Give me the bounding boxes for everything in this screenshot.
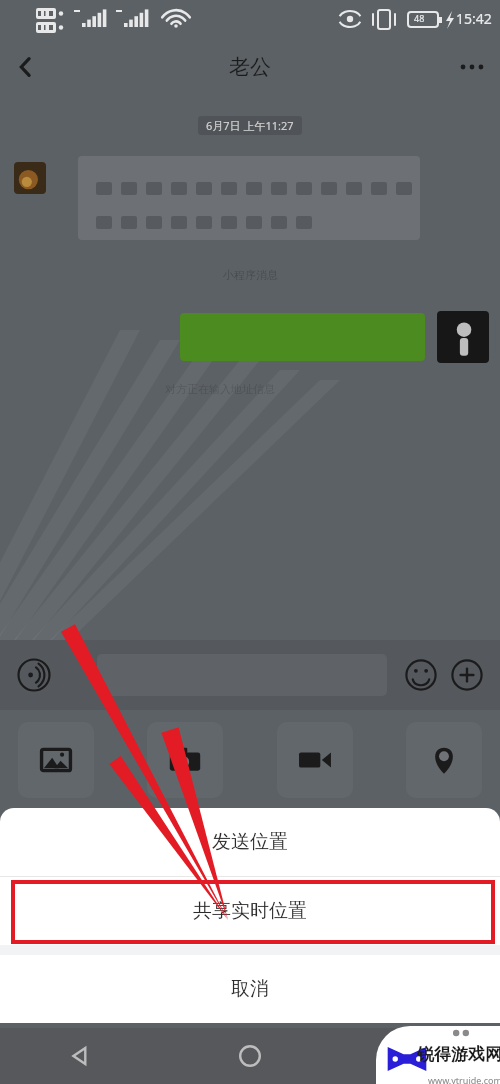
button[interactable]: 共享实时位置 (0, 877, 500, 945)
button[interactable]: Location (406, 722, 482, 798)
staticText: 发送位置 (212, 830, 288, 854)
button[interactable] (97, 654, 387, 696)
button[interactable]: Camera (147, 722, 223, 798)
button[interactable]: 取消 (0, 955, 500, 1023)
staticText: 48 (414, 12, 425, 24)
button[interactable]: Emoji (398, 652, 444, 698)
staticText: 共享实时位置 (193, 899, 307, 923)
staticText: 锐得游戏网 (417, 1044, 500, 1065)
button[interactable]: Recents (396, 1032, 444, 1080)
button[interactable]: Home (226, 1032, 274, 1080)
staticText: 对方正在输入地址信息 (165, 382, 275, 396)
staticText: www.ytruide.com (428, 1074, 500, 1084)
button[interactable]: More functions (444, 652, 490, 698)
staticText: 小程序消息 (223, 268, 278, 282)
staticText: 15:42 (456, 9, 492, 28)
button[interactable]: Photos (18, 722, 94, 798)
button[interactable]: Back (0, 41, 52, 93)
staticText: 取消 (231, 977, 269, 1001)
staticText: 6月7日 上午11:27 (206, 118, 294, 133)
button[interactable]: Video (277, 722, 353, 798)
staticText: 老公 (229, 54, 271, 80)
button[interactable]: 发送位置 (0, 808, 500, 876)
button[interactable]: Voice input (8, 649, 60, 701)
button[interactable]: More options (444, 39, 500, 95)
button[interactable]: Back (56, 1032, 104, 1080)
